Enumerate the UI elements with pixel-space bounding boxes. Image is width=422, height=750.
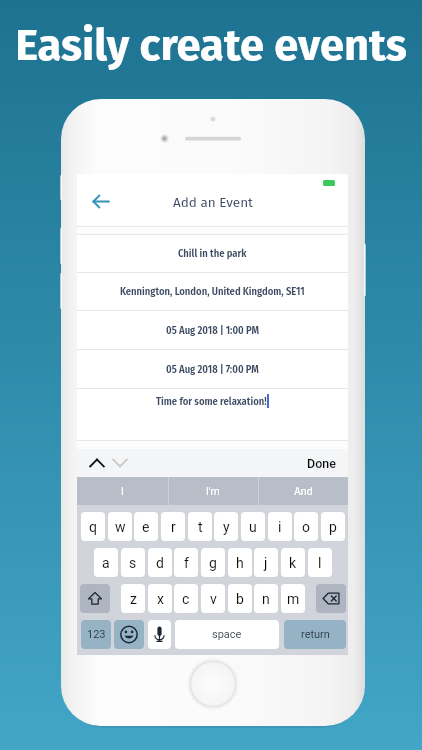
staticText: m <box>287 591 300 607</box>
staticText: And <box>294 485 313 497</box>
button[interactable]: r <box>161 512 185 541</box>
button[interactable]: a <box>94 548 118 577</box>
staticText: 05 Aug 2018 | 1:00 PM <box>166 324 259 337</box>
button[interactable]: m <box>281 584 305 613</box>
staticText: Kennington, London, United Kingdom, SE11 <box>120 285 305 298</box>
button[interactable]: z <box>121 584 145 613</box>
button[interactable]: space <box>175 620 279 649</box>
button[interactable]: d <box>148 548 172 577</box>
staticText: x <box>157 591 164 607</box>
button[interactable]: c <box>174 584 198 613</box>
button[interactable]: p <box>321 512 345 541</box>
staticText: Done <box>307 456 336 471</box>
button[interactable]: o <box>294 512 318 541</box>
staticText: b <box>236 591 244 607</box>
staticText: l <box>318 555 322 571</box>
staticText: d <box>156 555 164 571</box>
staticText: r <box>171 519 176 535</box>
button[interactable]: n <box>254 584 278 613</box>
staticText: e <box>142 519 150 535</box>
staticText: c <box>182 591 190 607</box>
button[interactable]: b <box>228 584 252 613</box>
button[interactable]: Shift <box>80 584 110 613</box>
button[interactable]: 05 Aug 2018 | 7:00 PM <box>77 350 348 388</box>
staticText: o <box>302 519 310 535</box>
button[interactable]: s <box>121 548 145 577</box>
staticText: w <box>115 519 126 535</box>
button[interactable]: Previous field <box>86 452 108 474</box>
button[interactable]: Backspace <box>316 584 346 613</box>
button[interactable]: And <box>258 477 348 505</box>
staticText: return <box>301 628 330 641</box>
button[interactable]: i <box>268 512 292 541</box>
staticText: u <box>249 519 257 535</box>
staticText: I'm <box>206 485 220 497</box>
button[interactable]: Done <box>299 451 348 476</box>
staticText: Time for some relaxation! <box>156 395 267 408</box>
staticText: k <box>289 555 297 571</box>
button[interactable]: f <box>174 548 198 577</box>
button[interactable]: x <box>148 584 172 613</box>
button[interactable]: y <box>214 512 238 541</box>
button[interactable]: 05 Aug 2018 | 1:00 PM <box>77 311 348 349</box>
staticText: n <box>262 591 270 607</box>
staticText: v <box>210 591 217 607</box>
staticText: f <box>184 555 189 571</box>
staticText: I <box>121 485 124 497</box>
button[interactable]: j <box>254 548 278 577</box>
button[interactable]: Next field <box>109 452 131 474</box>
button[interactable]: u <box>241 512 265 541</box>
staticText: s <box>129 555 137 571</box>
staticText: 05 Aug 2018 | 7:00 PM <box>166 363 259 376</box>
staticText: j <box>264 555 268 571</box>
staticText: a <box>102 555 110 571</box>
button[interactable]: Dictate <box>148 620 171 649</box>
button[interactable]: h <box>228 548 252 577</box>
staticText: 123 <box>87 628 106 641</box>
button[interactable]: Kennington, London, United Kingdom, SE11 <box>77 273 348 310</box>
staticText: z <box>130 591 137 607</box>
staticText: t <box>198 519 203 535</box>
button[interactable]: Emoji keyboard <box>114 620 144 649</box>
button[interactable]: Chill in the park <box>77 235 348 272</box>
staticText: p <box>329 519 337 535</box>
staticText: Chill in the park <box>178 247 247 260</box>
button[interactable]: I'm <box>168 477 258 505</box>
button[interactable]: w <box>108 512 132 541</box>
button[interactable]: return <box>284 620 346 649</box>
button[interactable]: I <box>77 477 168 505</box>
staticText: i <box>278 519 282 535</box>
staticText: y <box>223 519 230 535</box>
button[interactable]: g <box>201 548 225 577</box>
staticText: g <box>209 555 217 571</box>
button[interactable]: l <box>308 548 332 577</box>
staticText: Easily create events <box>0 19 422 71</box>
staticText: q <box>89 519 97 535</box>
staticText: space <box>212 628 242 641</box>
staticText: h <box>236 555 244 571</box>
button[interactable]: 123 <box>81 620 111 649</box>
button[interactable]: q <box>81 512 105 541</box>
staticText: Add an Event <box>173 194 253 210</box>
button[interactable]: Back <box>78 180 118 220</box>
button[interactable]: v <box>201 584 225 613</box>
button[interactable]: t <box>188 512 212 541</box>
button[interactable]: k <box>281 548 305 577</box>
button[interactable]: e <box>134 512 158 541</box>
button[interactable]: Time for some relaxation! <box>77 389 348 440</box>
